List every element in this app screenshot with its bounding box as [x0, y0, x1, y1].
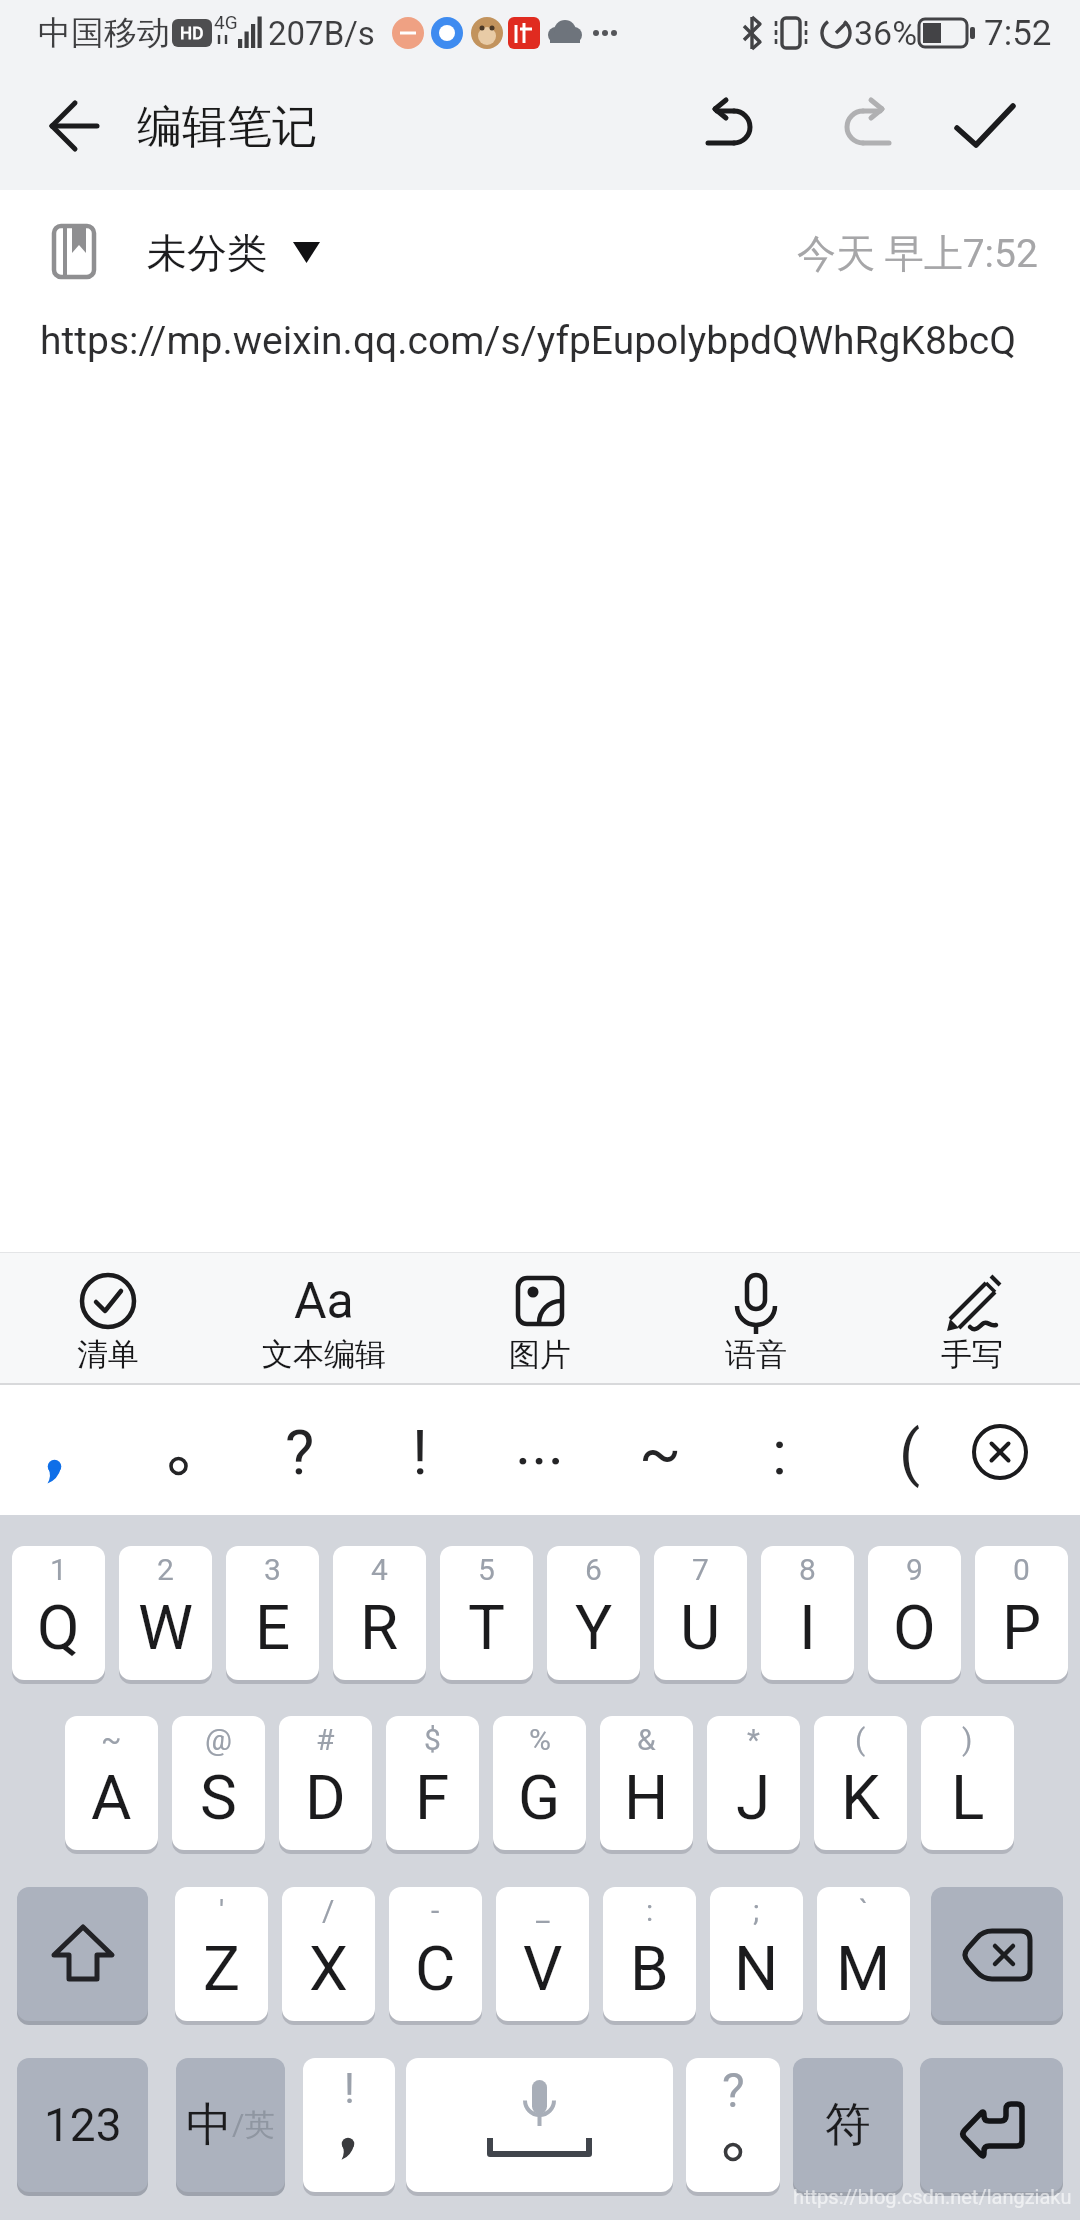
button[interactable]: _ [496, 1887, 589, 2021]
button[interactable] [30, 90, 120, 162]
button[interactable]: 2 [119, 1546, 212, 1680]
staticText: D [305, 1761, 346, 1834]
staticText: R [360, 1591, 399, 1664]
button[interactable]: - [389, 1887, 482, 2021]
staticText: 中 [186, 2096, 232, 2154]
button[interactable] [840, 1390, 960, 1515]
button[interactable]: & [600, 1716, 693, 1850]
button[interactable]: 8 [761, 1546, 854, 1680]
button[interactable] [837, 100, 889, 154]
button[interactable]: ) [921, 1716, 1014, 1850]
staticText: 中国移动 [38, 12, 170, 54]
staticText: 语音 [725, 1335, 787, 1374]
button[interactable]: % [493, 1716, 586, 1850]
button[interactable] [600, 1390, 720, 1515]
button[interactable] [648, 1253, 864, 1384]
staticText: U [680, 1591, 721, 1664]
button[interactable] [0, 1390, 120, 1515]
staticText: ( [899, 1416, 921, 1489]
button[interactable]: 中 [176, 2058, 285, 2192]
button[interactable] [140, 215, 340, 291]
button[interactable]: / [282, 1887, 375, 2021]
staticText: C [415, 1932, 456, 2005]
staticText: 符 [825, 2096, 871, 2154]
button[interactable] [17, 1887, 148, 2021]
staticText: 2 [157, 1552, 174, 1587]
staticText: 7 [692, 1552, 709, 1587]
staticText: 今天 早上7:52 [797, 229, 1038, 278]
staticText: / [322, 1893, 335, 1928]
button[interactable]: 4 [333, 1546, 426, 1680]
staticText: ) [962, 1722, 973, 1757]
staticText: 清单 [77, 1335, 139, 1374]
button[interactable] [360, 1390, 480, 1515]
button[interactable]: $ [386, 1716, 479, 1850]
staticText: I [799, 1591, 816, 1664]
button[interactable]: 5 [440, 1546, 533, 1680]
button[interactable]: 符 [793, 2058, 903, 2192]
staticText: _ [536, 1893, 550, 1928]
button[interactable] [0, 1253, 216, 1384]
button[interactable] [240, 1390, 360, 1515]
staticText: ! [344, 2064, 355, 2113]
staticText: E [255, 1591, 291, 1664]
button[interactable]: # [279, 1716, 372, 1850]
button[interactable] [720, 1390, 840, 1515]
staticText: ~ [639, 1416, 682, 1489]
staticText: HD [180, 23, 204, 43]
button[interactable] [120, 1390, 240, 1515]
button[interactable] [406, 2058, 673, 2192]
button[interactable]: ' [175, 1887, 268, 2021]
button[interactable] [40, 212, 110, 292]
staticText: H [624, 1761, 669, 1834]
button[interactable]: ` [817, 1887, 910, 2021]
staticText: : [646, 1893, 654, 1928]
button[interactable]: : [603, 1887, 696, 2021]
button[interactable]: ( [814, 1716, 907, 1850]
button[interactable]: ; [710, 1887, 803, 2021]
staticText: 4 [371, 1552, 388, 1587]
staticText: * [747, 1722, 760, 1757]
staticText: G [518, 1761, 561, 1834]
staticText: J [736, 1761, 771, 1834]
staticText: 手写 [941, 1335, 1003, 1374]
button[interactable] [432, 1253, 648, 1384]
button[interactable]: 7 [654, 1546, 747, 1680]
staticText: https://blog.csdn.net/langziaku [793, 2185, 1072, 2208]
button[interactable]: 123 [17, 2058, 148, 2192]
button[interactable]: ? [686, 2058, 780, 2192]
button[interactable] [864, 1253, 1080, 1384]
staticText: 9 [906, 1552, 923, 1587]
staticText: ( [855, 1722, 866, 1757]
button[interactable] [216, 1253, 432, 1384]
staticText: T [468, 1591, 505, 1664]
staticText: K [841, 1761, 880, 1834]
staticText: https://mp.weixin.qq.com/s/yfpEupolybpdQ… [40, 318, 1017, 364]
staticText: S [200, 1761, 237, 1834]
staticText: ' [219, 1893, 225, 1928]
button[interactable] [920, 2058, 1063, 2192]
staticText: 0 [1013, 1552, 1030, 1587]
staticText: 36% [854, 13, 918, 53]
button[interactable]: @ [172, 1716, 265, 1850]
staticText: ... [515, 1406, 565, 1479]
button[interactable]: ! [303, 2058, 395, 2192]
button[interactable]: * [707, 1716, 800, 1850]
button[interactable]: 1 [12, 1546, 105, 1680]
staticText: # [316, 1722, 335, 1757]
staticText: A [91, 1761, 132, 1834]
staticText: & [637, 1722, 656, 1757]
button[interactable] [480, 1390, 600, 1515]
staticText: M [836, 1932, 891, 2005]
button[interactable] [931, 1887, 1063, 2021]
button[interactable]: 6 [547, 1546, 640, 1680]
button[interactable]: 3 [226, 1546, 319, 1680]
button[interactable] [960, 1390, 1080, 1515]
button[interactable]: 9 [868, 1546, 961, 1680]
staticText: P [1002, 1591, 1042, 1664]
button[interactable] [708, 100, 760, 154]
button[interactable]: 0 [975, 1546, 1068, 1680]
button[interactable] [945, 90, 1025, 162]
staticText: B [630, 1932, 669, 2005]
button[interactable]: ~ [65, 1716, 158, 1850]
